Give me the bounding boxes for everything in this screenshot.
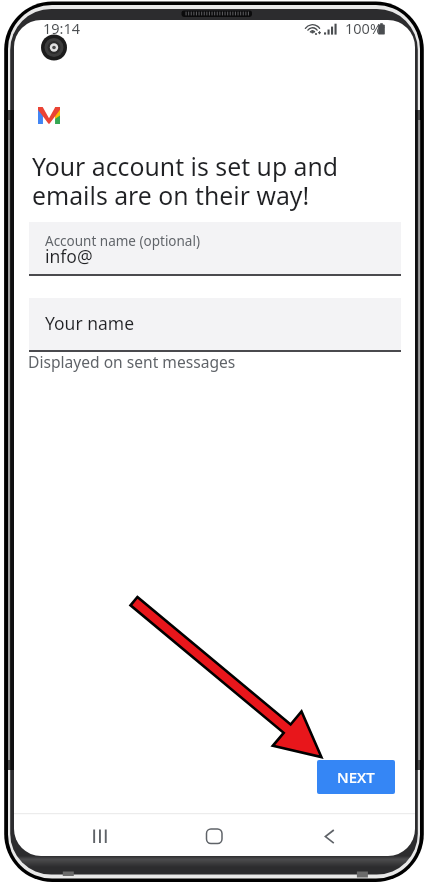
button[interactable]: Account name (optional): [29, 222, 401, 274]
button[interactable]: Recent apps: [14, 814, 147, 856]
staticText: Account name (optional): [45, 232, 200, 250]
staticText: 19:14: [43, 18, 81, 38]
button[interactable]: Your name: [29, 298, 401, 350]
button[interactable]: Back: [281, 814, 415, 856]
staticText: NEXT: [337, 767, 375, 787]
staticText: Your account is set up and emails are on…: [32, 149, 339, 212]
staticText: Displayed on sent messages: [28, 351, 236, 372]
button[interactable]: NEXT: [317, 760, 395, 794]
staticText: Your name: [45, 311, 135, 335]
staticText: 100%: [345, 18, 382, 38]
staticText: info@: [45, 244, 93, 268]
button[interactable]: Home: [147, 814, 281, 856]
